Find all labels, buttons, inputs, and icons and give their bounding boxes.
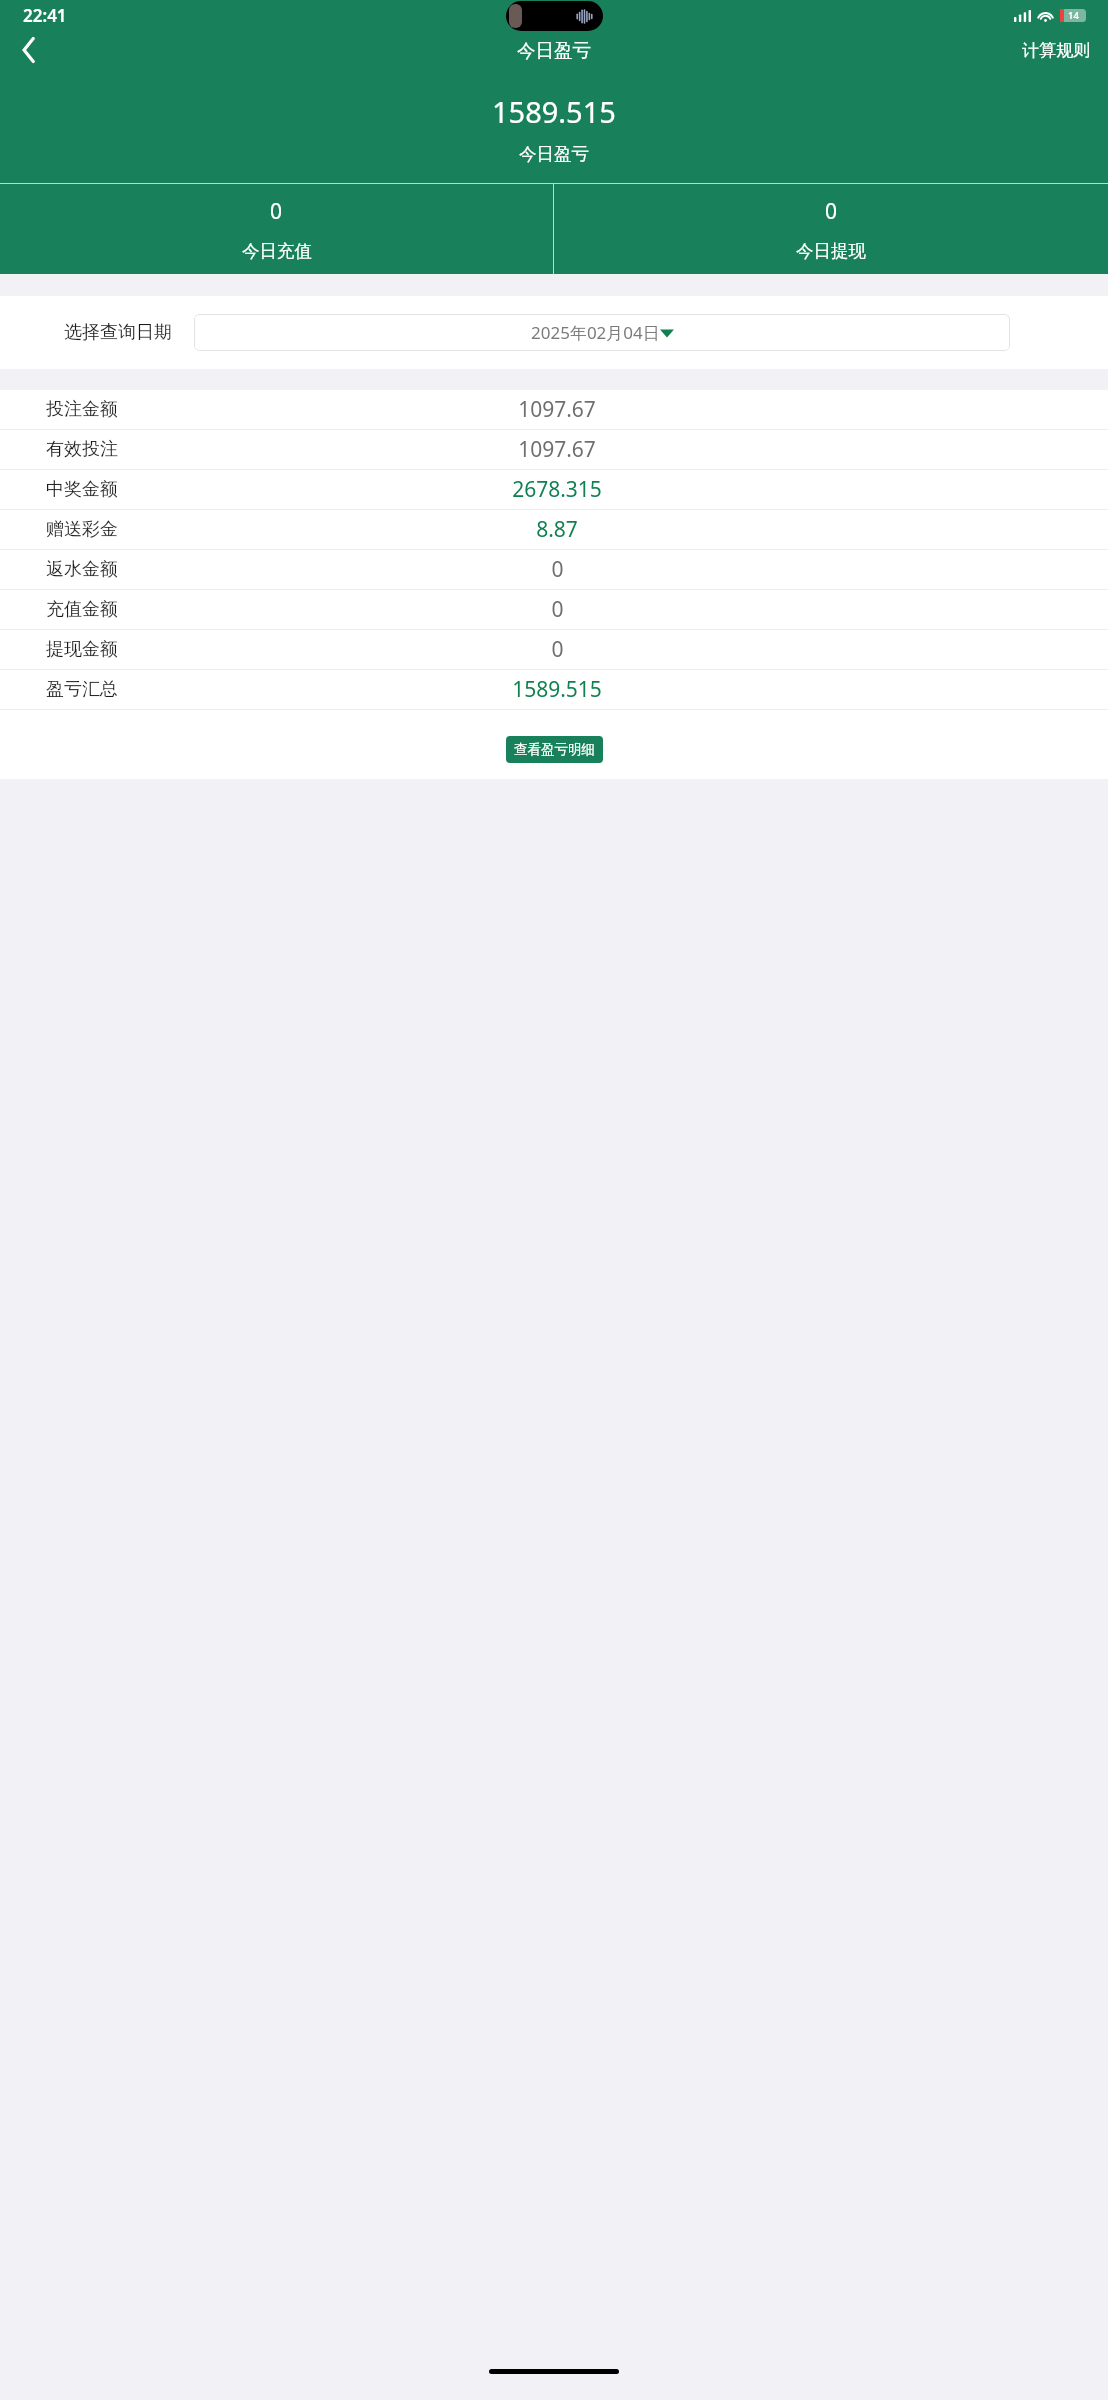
button[interactable]: 0 [554,184,1108,274]
button[interactable]: 盈亏汇总 [0,670,1108,709]
button[interactable]: 提现金额 [0,630,1108,669]
staticText: 2678.315 [512,475,602,504]
staticText: 8.87 [536,515,578,544]
staticText: 今日盈亏 [519,143,589,165]
staticText: 今日盈亏 [517,39,591,62]
button[interactable]: Back [0,30,56,70]
button[interactable]: 赠送彩金 [0,510,1108,549]
staticText: 0 [270,197,283,226]
button[interactable]: 充值金额 [0,590,1108,629]
button[interactable]: 查看盈亏明细 [506,736,603,763]
staticText: 计算规则 [1022,40,1090,61]
staticText: 充值金额 [46,598,118,621]
staticText: 选择查询日期 [64,321,172,344]
button[interactable]: 中奖金额 [0,470,1108,509]
staticText: 14 [1068,9,1079,22]
button[interactable]: 返水金额 [0,550,1108,589]
staticText: 赠送彩金 [46,518,118,541]
staticText: 2025年02月04日 [531,321,660,344]
staticText: 1097.67 [518,395,596,424]
button[interactable]: 2025年02月04日 [194,314,1010,351]
staticText: 1097.67 [518,435,596,464]
button[interactable]: 0 [0,184,553,274]
button[interactable]: 有效投注 [0,430,1108,469]
button[interactable]: 投注金额 [0,390,1108,429]
staticText: 今日充值 [242,240,312,262]
button[interactable]: 计算规则 [1004,30,1108,70]
staticText: 0 [551,635,564,664]
staticText: 投注金额 [46,398,118,421]
staticText: 盈亏汇总 [46,678,118,701]
staticText: 提现金额 [46,638,118,661]
staticText: 0 [551,555,564,584]
staticText: 有效投注 [46,438,118,461]
staticText: 今日提现 [796,240,866,262]
staticText: 返水金额 [46,558,118,581]
staticText: 22:41 [23,4,67,27]
staticText: 查看盈亏明细 [514,741,595,758]
staticText: 0 [551,595,564,624]
staticText: 1589.515 [492,92,616,131]
staticText: 0 [825,197,838,226]
staticText: 中奖金额 [46,478,118,501]
staticText: 1589.515 [512,675,602,704]
